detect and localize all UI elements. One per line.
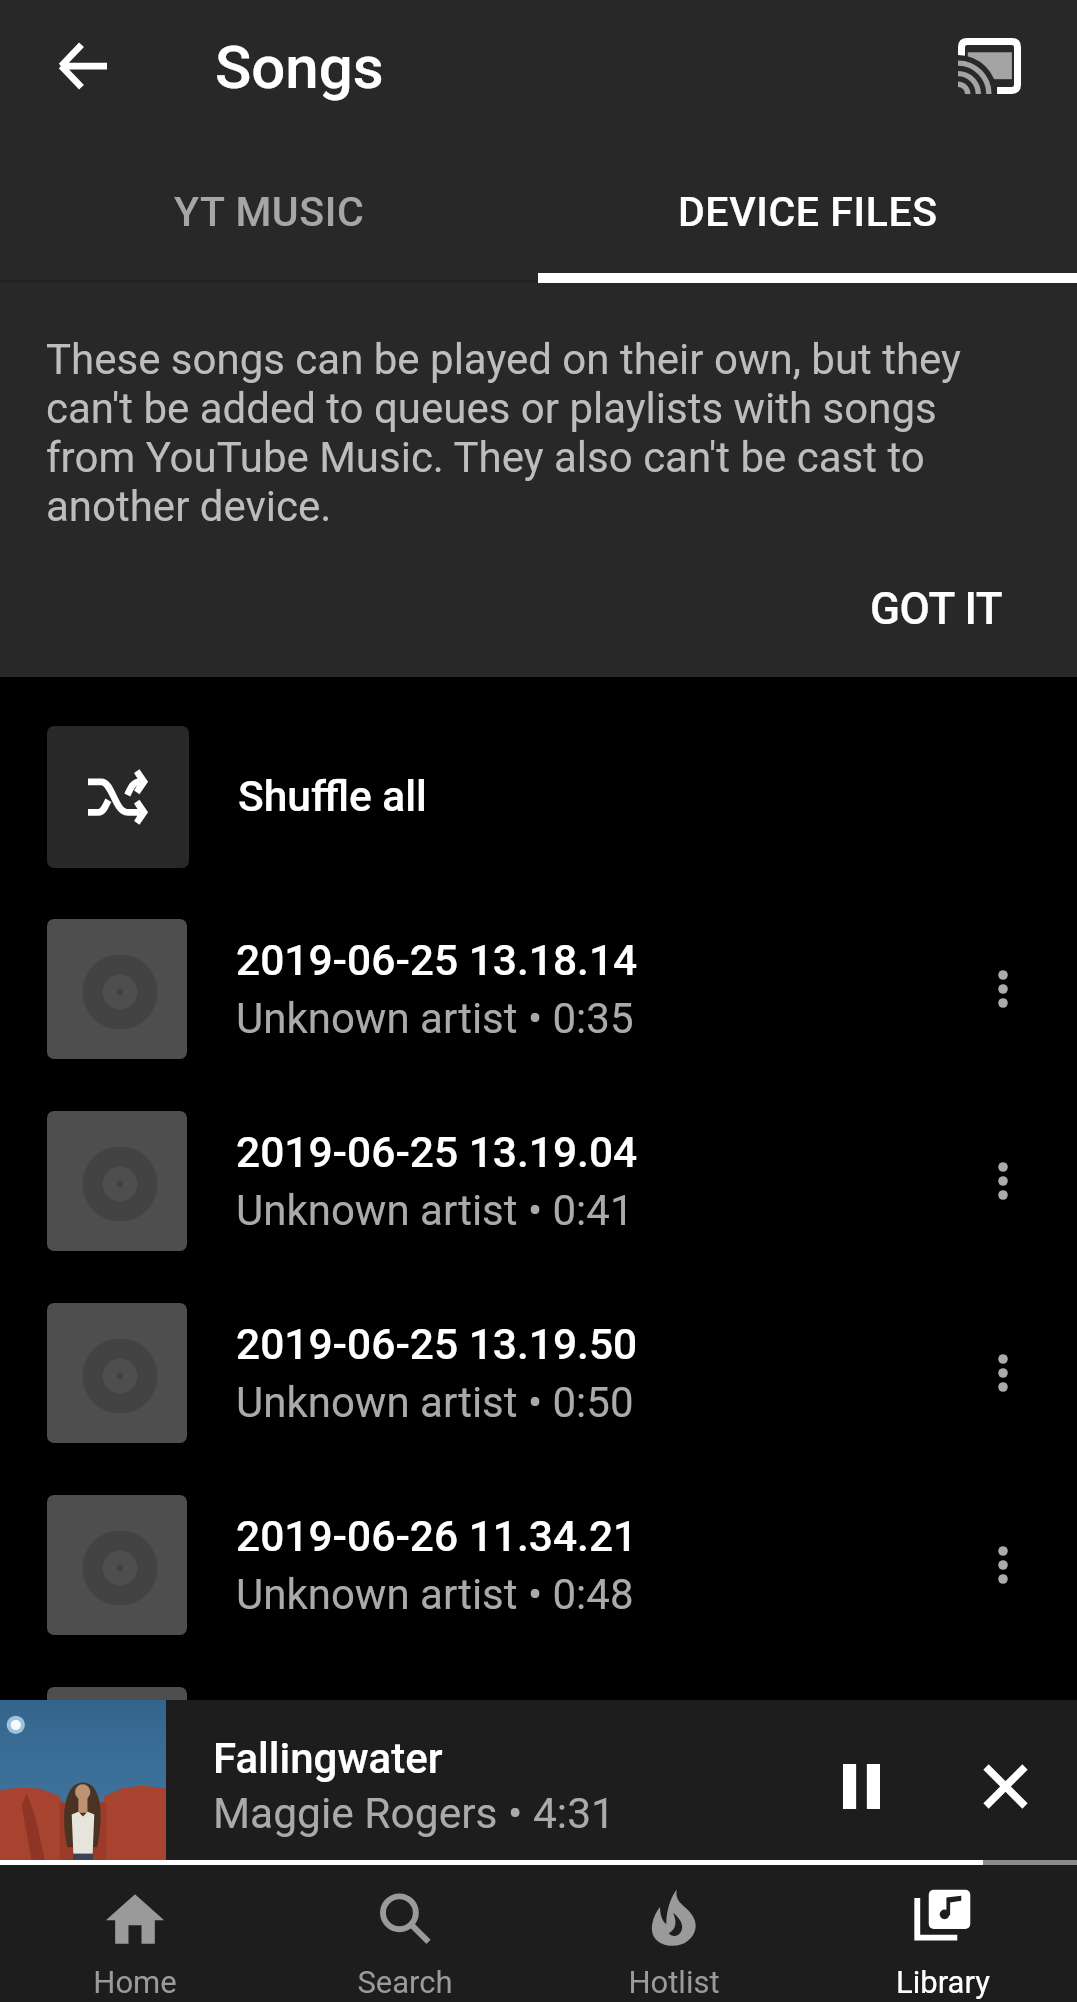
- button[interactable]: Fallingwater: [0, 1700, 806, 1860]
- button[interactable]: Search: [270, 1865, 539, 2002]
- button[interactable]: Hotlist: [539, 1865, 808, 2002]
- button[interactable]: YT MUSIC: [0, 140, 538, 283]
- button[interactable]: More options: [955, 1325, 1051, 1421]
- staticText: 2019-06-25 13.19.50: [236, 1320, 638, 1370]
- button[interactable]: 2019-06-25 13.19.50: [0, 1277, 1077, 1469]
- button[interactable]: Home: [0, 1865, 270, 2002]
- staticText: Shuffle all: [238, 772, 427, 822]
- staticText: Songs: [215, 32, 384, 102]
- button[interactable]: Library: [808, 1865, 1077, 2002]
- button[interactable]: More options: [955, 1133, 1051, 1229]
- staticText: These songs can be played on their own, …: [46, 335, 977, 531]
- staticText: 2019-06-26 11.36.02: [236, 1704, 638, 1754]
- button[interactable]: 2019-06-25 13.19.04: [0, 1085, 1077, 1277]
- staticText: Unknown artist • 0:39: [236, 1762, 634, 1811]
- button[interactable]: GOT IT: [854, 569, 1019, 649]
- button[interactable]: 2019-06-26 11.36.02: [0, 1661, 1077, 1853]
- button[interactable]: Back: [32, 16, 132, 116]
- staticText: 2019-06-25 13.19.04: [236, 1128, 638, 1178]
- staticText: DEVICE FILES: [678, 188, 938, 236]
- button[interactable]: 2019-06-25 13.18.14: [0, 893, 1077, 1085]
- staticText: Home: [93, 1964, 177, 2000]
- button[interactable]: Close: [950, 1731, 1060, 1841]
- staticText: Fallingwater: [213, 1734, 443, 1783]
- staticText: 2019-06-25 13.18.14: [236, 936, 638, 986]
- button[interactable]: Cast: [939, 16, 1039, 116]
- button[interactable]: More options: [955, 1517, 1051, 1613]
- button[interactable]: 2019-06-26 11.34.21: [0, 1469, 1077, 1661]
- staticText: Unknown artist • 0:35: [236, 994, 634, 1043]
- staticText: YT MUSIC: [174, 188, 365, 236]
- staticText: GOT IT: [870, 583, 1003, 635]
- staticText: Hotlist: [628, 1964, 720, 2000]
- button[interactable]: Shuffle all: [0, 701, 1077, 893]
- staticText: Library: [896, 1964, 990, 2000]
- staticText: Maggie Rogers • 4:31: [213, 1789, 615, 1839]
- staticText: Search: [357, 1964, 453, 2000]
- button[interactable]: DEVICE FILES: [538, 140, 1077, 283]
- staticText: Unknown artist • 0:41: [236, 1186, 634, 1235]
- staticText: Unknown artist • 0:48: [236, 1570, 634, 1619]
- staticText: 2019-06-26 11.34.21: [236, 1512, 638, 1562]
- button[interactable]: Pause: [806, 1731, 916, 1841]
- button[interactable]: More options: [955, 941, 1051, 1037]
- staticText: Unknown artist • 0:50: [236, 1378, 634, 1427]
- button[interactable]: More options: [955, 1709, 1051, 1805]
